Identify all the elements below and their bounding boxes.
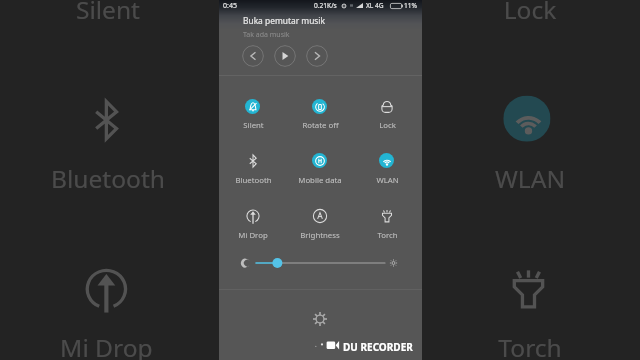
button[interactable]: Mobile data bbox=[223, 86, 412, 203]
button[interactable]: Mi Drop bbox=[12, 255, 201, 360]
staticText: Brightness bbox=[300, 230, 340, 241]
staticText: Mi Drop bbox=[59, 332, 154, 360]
staticText: DU RECORDER bbox=[343, 340, 413, 354]
button[interactable]: Next track bbox=[306, 45, 328, 67]
button[interactable]: Brightness bbox=[290, 205, 350, 243]
button[interactable]: Buka pemutar musik bbox=[243, 15, 326, 26]
button[interactable]: Rotate off bbox=[290, 96, 350, 134]
button[interactable]: Rotate off bbox=[223, 0, 412, 37]
button[interactable]: Lock bbox=[434, 0, 623, 37]
staticText: Lock bbox=[503, 0, 557, 28]
button[interactable]: Silent bbox=[12, 0, 201, 37]
button[interactable]: Previous track bbox=[242, 45, 264, 67]
staticText: XL 4G bbox=[366, 1, 384, 10]
staticText: Tak ada musik bbox=[243, 30, 290, 40]
staticText: Buka pemutar musik bbox=[243, 15, 326, 26]
staticText: Lock bbox=[379, 120, 396, 131]
button[interactable]: Mobile data bbox=[290, 150, 350, 188]
button[interactable]: Bluetooth bbox=[223, 150, 283, 188]
staticText: WLAN bbox=[376, 175, 399, 186]
button[interactable]: WLAN bbox=[357, 150, 417, 188]
staticText: Bluetooth bbox=[50, 163, 166, 197]
button[interactable]: Mi Drop bbox=[223, 205, 283, 243]
button[interactable]: Torch bbox=[434, 255, 623, 360]
staticText: Mobile data bbox=[298, 175, 342, 186]
staticText: Silent bbox=[243, 120, 264, 131]
staticText: Mobile data bbox=[248, 163, 387, 197]
staticText: Bluetooth bbox=[235, 175, 272, 186]
staticText: Rotate off bbox=[261, 0, 377, 28]
button[interactable]: Settings bbox=[310, 309, 330, 329]
button[interactable]: Lock bbox=[357, 96, 417, 134]
button[interactable]: Brightness bbox=[223, 255, 412, 360]
button[interactable]: Play bbox=[274, 45, 296, 67]
staticText: Mi Drop bbox=[238, 230, 268, 241]
staticText: WLAN bbox=[494, 163, 566, 197]
staticText: Torch bbox=[377, 230, 398, 241]
staticText: 0:45 bbox=[223, 1, 237, 11]
staticText: Silent bbox=[75, 0, 141, 28]
staticText: Torch bbox=[497, 332, 563, 360]
staticText: Brightness bbox=[254, 332, 380, 360]
button[interactable]: WLAN bbox=[434, 86, 623, 203]
staticText: Rotate off bbox=[302, 120, 339, 131]
staticText: 0.21K/s bbox=[314, 1, 337, 10]
staticText: 11% bbox=[404, 1, 418, 10]
button[interactable]: Torch bbox=[357, 205, 417, 243]
button[interactable]: Bluetooth bbox=[12, 86, 201, 203]
button[interactable]: Silent bbox=[223, 96, 283, 134]
